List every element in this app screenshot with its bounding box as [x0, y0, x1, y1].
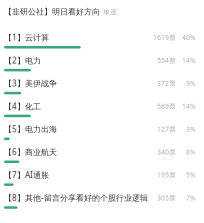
staticText: 127票 — [157, 125, 176, 134]
staticText: 569票 — [157, 102, 176, 111]
staticText: 3% — [186, 125, 196, 134]
staticText: 【4】化工 — [4, 101, 41, 111]
staticText: 14% — [182, 102, 196, 111]
button[interactable]: 【3】美伊战争 — [0, 75, 204, 98]
staticText: 5% — [186, 170, 196, 179]
staticText: 14% — [182, 56, 196, 65]
button[interactable]: 【4】化工 — [0, 98, 204, 121]
staticText: 7% — [186, 193, 196, 202]
button[interactable]: 【5】电力出海 — [0, 121, 204, 143]
staticText: 1619票 — [153, 33, 176, 42]
button[interactable]: 【7】AI通胀 — [0, 166, 204, 189]
staticText: 【8】其他-留言分享看好的个股行业逻辑 — [4, 192, 148, 203]
staticText: 【2】电力 — [4, 55, 41, 66]
staticText: 340票 — [157, 148, 176, 156]
staticText: 【7】AI通胀 — [4, 170, 49, 180]
staticText: 【韭研公社】明日看好方向 — [4, 7, 100, 17]
staticText: 305票 — [157, 193, 176, 202]
staticText: 554票 — [157, 56, 176, 65]
button[interactable]: 【8】其他-留言分享看好的个股行业逻辑 — [0, 189, 204, 212]
staticText: 195票 — [157, 170, 176, 179]
staticText: 单选 — [103, 8, 117, 16]
button[interactable]: 【6】商业航天 — [0, 143, 204, 166]
button[interactable]: 【2】电力 — [0, 52, 204, 75]
staticText: 372票 — [157, 79, 176, 88]
staticText: 【5】电力出海 — [4, 124, 57, 134]
staticText: 9% — [186, 79, 196, 88]
staticText: 8% — [186, 148, 196, 156]
staticText: 【6】商业航天 — [4, 147, 57, 157]
staticText: 40% — [182, 33, 196, 42]
staticText: 【1】云计算 — [4, 32, 49, 43]
button[interactable]: 【1】云计算 — [0, 29, 204, 52]
staticText: 【3】美伊战争 — [4, 78, 57, 89]
